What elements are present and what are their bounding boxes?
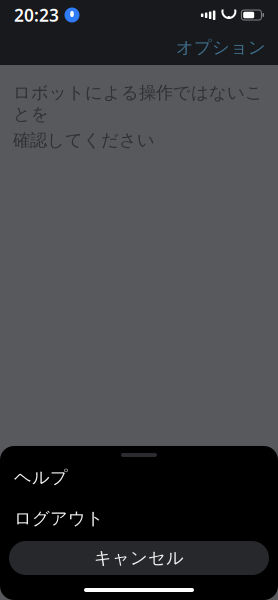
staticText: ヘルプ (14, 467, 68, 488)
staticText: キャンセル (94, 547, 184, 569)
button[interactable]: ヘルプ (0, 457, 278, 498)
staticText: オプション (176, 37, 266, 58)
staticText: 確認してください (13, 130, 155, 151)
button[interactable]: ログアウト (0, 498, 278, 539)
button[interactable]: オプション (164, 31, 278, 64)
staticText: 20:23 (14, 3, 59, 26)
staticText: ログアウト (14, 508, 104, 529)
staticText: ロボットによる操作ではないことを (13, 82, 263, 125)
button[interactable]: キャンセル (9, 541, 269, 575)
